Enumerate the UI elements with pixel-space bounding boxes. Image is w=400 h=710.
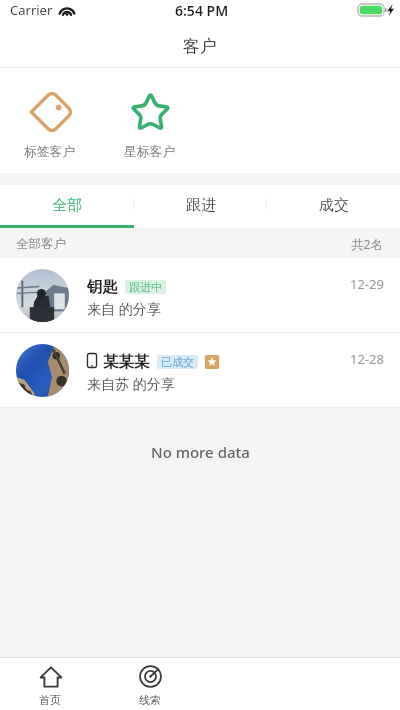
- staticText: 12-29: [350, 275, 384, 293]
- button[interactable]: 钥匙: [0, 258, 400, 333]
- staticText: 6:54 PM: [175, 1, 229, 20]
- staticText: 全部客户: [16, 236, 66, 252]
- staticText: 已成交: [161, 355, 194, 369]
- button[interactable]: 首页: [0, 658, 100, 710]
- staticText: 线索: [139, 693, 161, 707]
- staticText: 首页: [39, 693, 61, 707]
- button[interactable]: 全部: [0, 185, 134, 228]
- button[interactable]: 成交: [267, 185, 400, 228]
- button[interactable]: 星标客户: [100, 68, 200, 173]
- staticText: 全部: [52, 196, 82, 215]
- staticText: 跟进中: [129, 280, 162, 294]
- button[interactable]: 某某某: [0, 333, 400, 408]
- staticText: 成交: [319, 196, 349, 215]
- staticText: 某某某: [103, 352, 150, 372]
- staticText: 标签客户: [24, 144, 76, 160]
- staticText: 来自苏 的分享: [87, 374, 175, 393]
- staticText: 12-28: [350, 350, 384, 368]
- staticText: No more data: [151, 442, 250, 462]
- staticText: 客户: [183, 36, 217, 57]
- button[interactable]: 线索: [100, 658, 200, 710]
- staticText: 共2名: [351, 236, 384, 253]
- staticText: 星标客户: [124, 144, 176, 160]
- staticText: 跟进: [186, 196, 216, 215]
- button[interactable]: 标签客户: [0, 68, 100, 173]
- staticText: Carrier: [10, 1, 53, 19]
- staticText: 来自 的分享: [87, 299, 161, 318]
- button[interactable]: 跟进: [134, 185, 267, 228]
- staticText: 钥匙: [87, 277, 118, 297]
